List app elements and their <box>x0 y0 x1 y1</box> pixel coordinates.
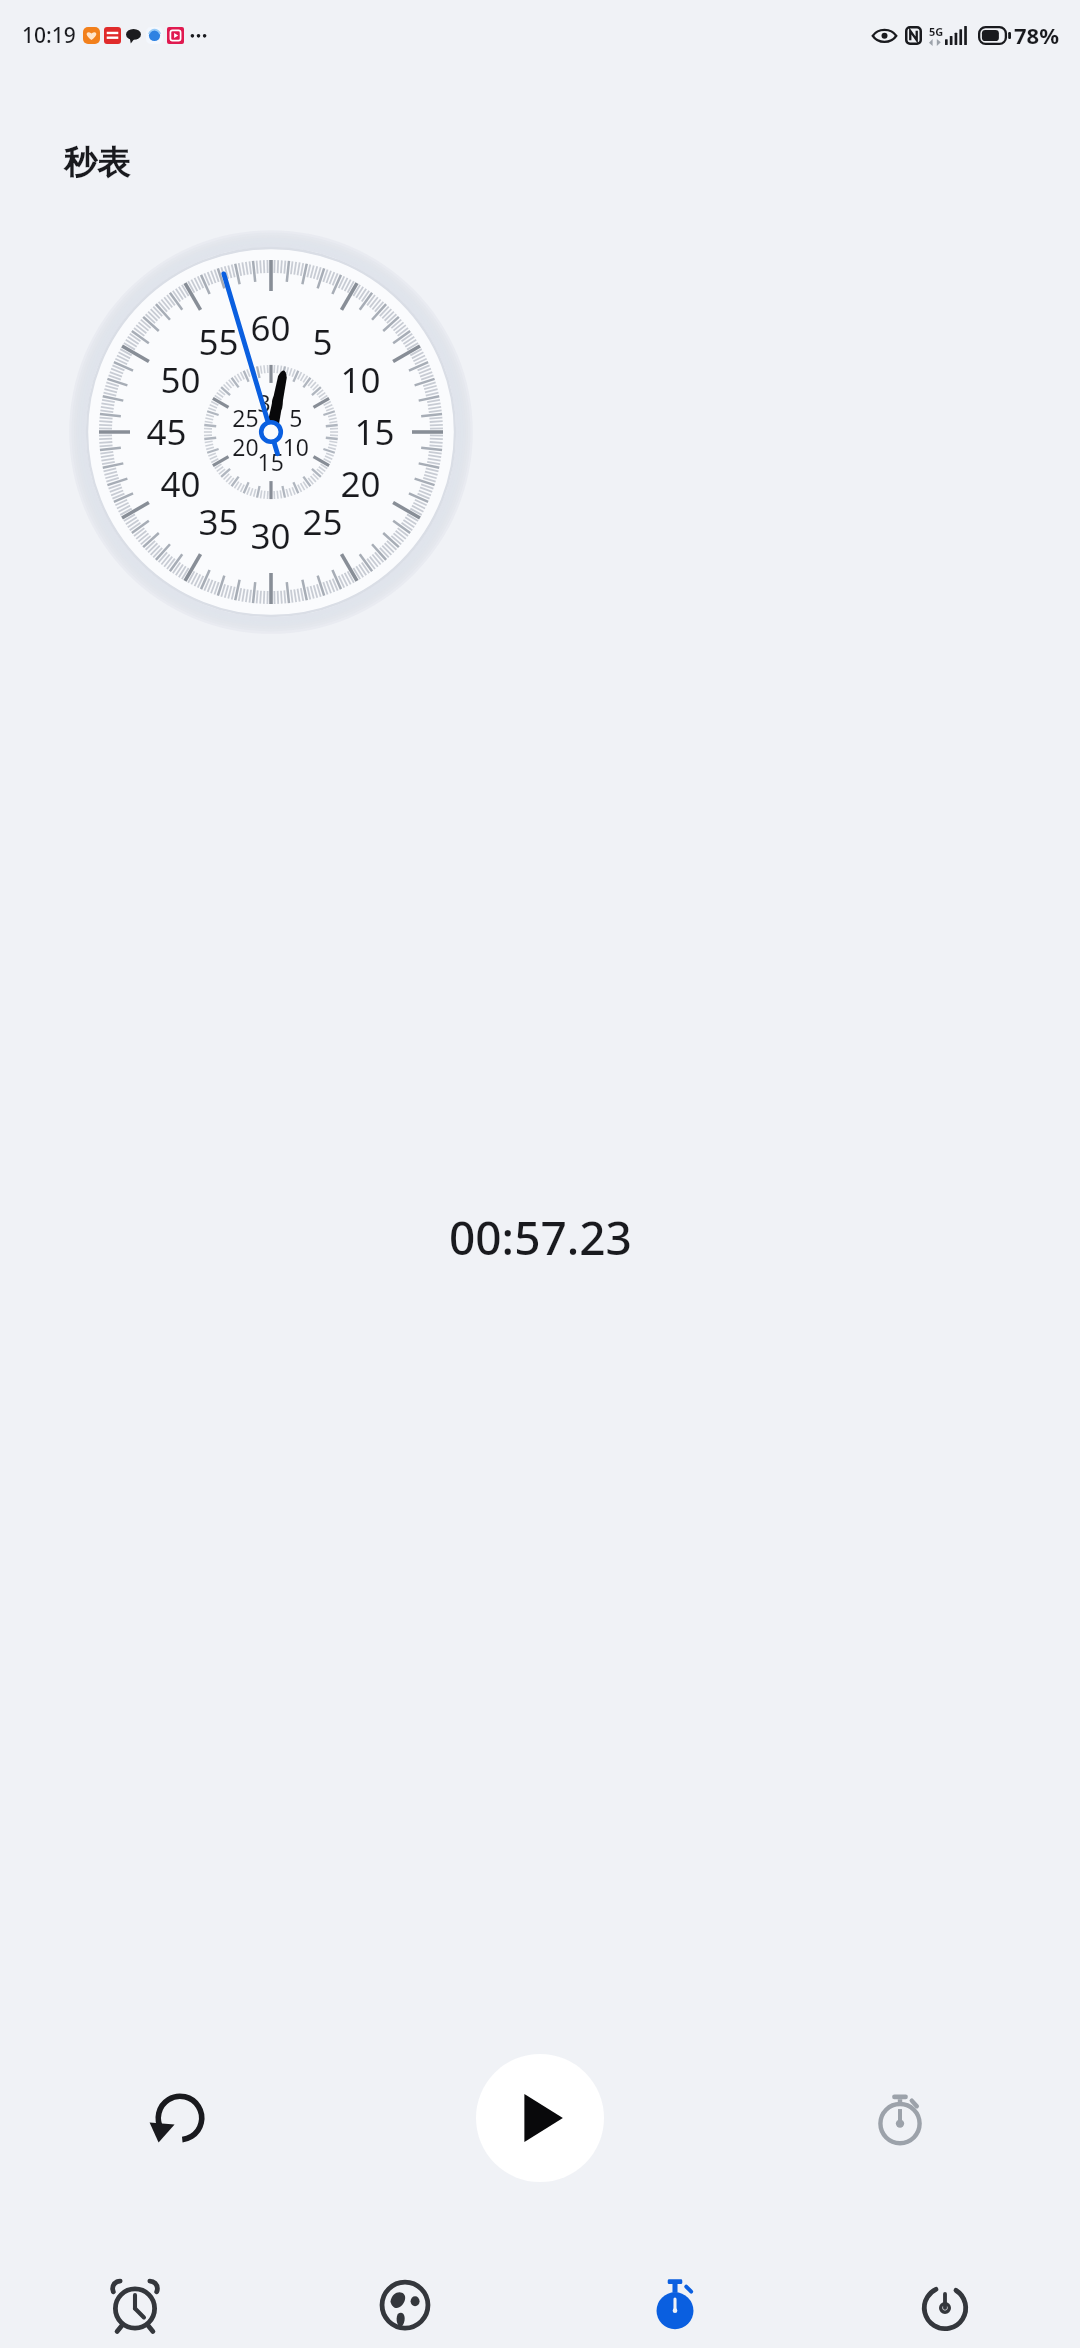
button[interactable]: Lap <box>720 2042 1080 2194</box>
button[interactable]: Stopwatch <box>540 2228 810 2348</box>
button[interactable]: World clock <box>270 2228 540 2348</box>
staticText: 00:57.23 <box>449 1206 632 1269</box>
staticText: 5G <box>929 24 944 39</box>
button[interactable]: Start <box>476 2054 604 2182</box>
staticText: 秒表 <box>64 142 130 184</box>
staticText: 10:19 <box>22 21 76 50</box>
button[interactable]: Alarm <box>0 2228 270 2348</box>
button[interactable]: Reset <box>0 2042 360 2194</box>
staticText: 78% <box>1014 20 1060 50</box>
button[interactable]: Timer <box>810 2228 1080 2348</box>
